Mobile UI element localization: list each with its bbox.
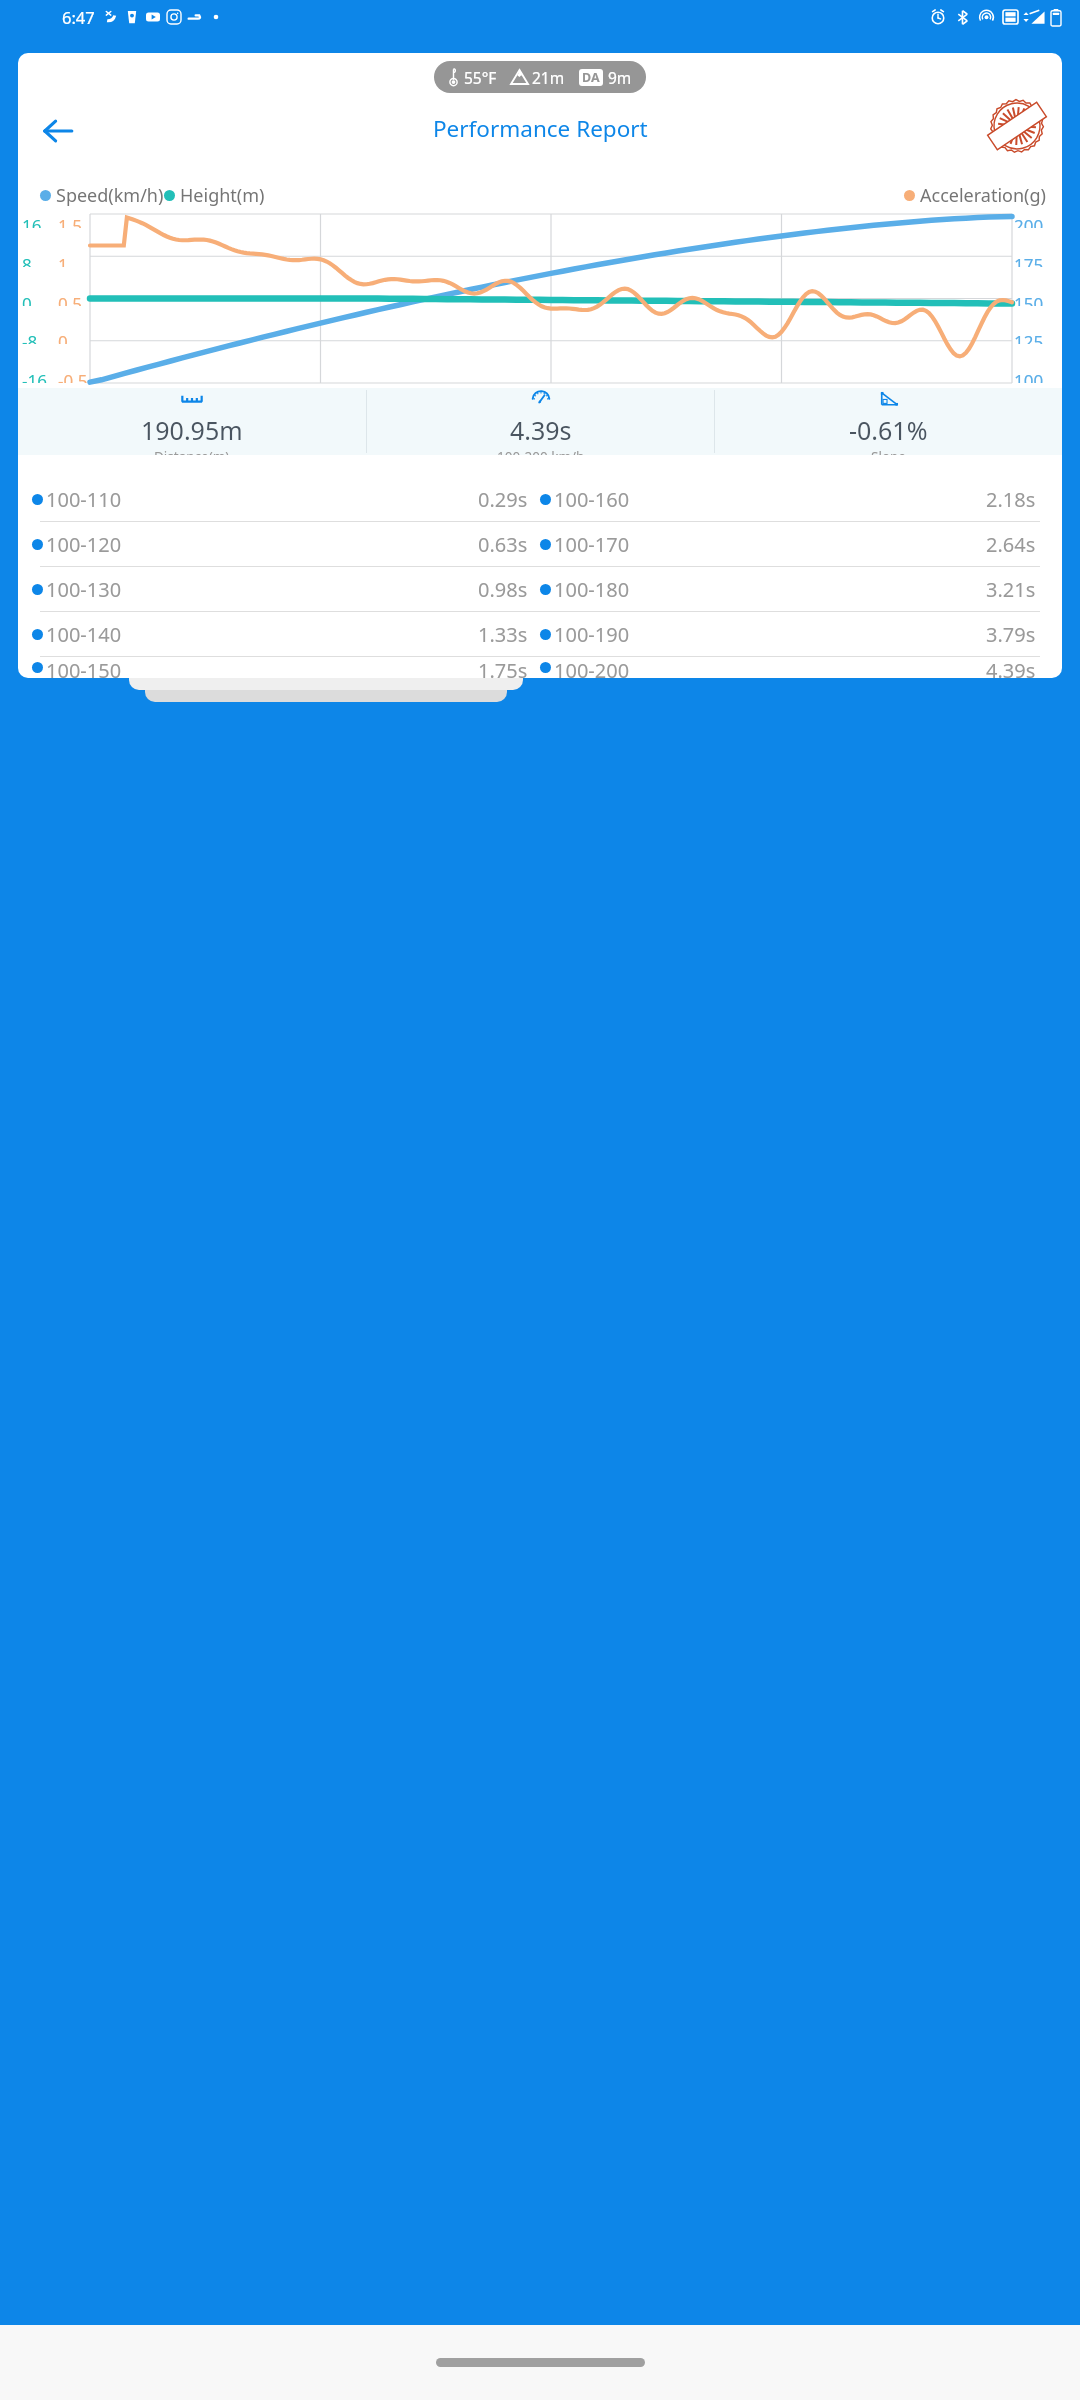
staticText: 100-190 [554, 621, 630, 648]
staticText: 4.39s [510, 413, 572, 447]
button[interactable]: 100-130 [32, 567, 1048, 611]
staticText: 1.33s [478, 621, 528, 648]
staticText: 100-130 [46, 576, 122, 603]
button[interactable]: 100-150 [32, 657, 1048, 678]
staticText: Acceleration(g) [920, 183, 1046, 208]
staticText: 125 [1014, 330, 1044, 344]
staticText: 55°F [464, 67, 497, 88]
staticText: -0.5 [58, 369, 88, 383]
staticText: 100-140 [46, 621, 122, 648]
staticText: 100 [1014, 369, 1044, 383]
staticText: 100-200 km/h [497, 448, 585, 455]
staticText: 100-170 [554, 531, 630, 558]
staticText: Speed(km/h) [56, 183, 164, 208]
staticText: 2.64s [986, 531, 1036, 558]
staticText: 100-120 [46, 531, 122, 558]
button[interactable]: 100-140 [32, 612, 1048, 656]
staticText: 1 [58, 253, 68, 267]
staticText: 150 [1014, 292, 1044, 306]
staticText: Height(m) [180, 183, 265, 208]
staticText: 0.63s [478, 531, 528, 558]
staticText: 8 [22, 253, 32, 267]
staticText: 3.79s [986, 621, 1036, 648]
staticText: 1.75s [478, 657, 528, 678]
staticText: 100-160 [554, 486, 630, 513]
staticText: 175 [1014, 253, 1044, 267]
staticText: 1.5 [58, 214, 83, 228]
staticText: 0.98s [478, 576, 528, 603]
staticText: 190.95m [141, 413, 243, 447]
staticText: 200 [1014, 214, 1044, 228]
staticText: 0.29s [478, 486, 528, 513]
staticText: 100-200 [554, 657, 630, 678]
staticText: 21m [532, 67, 565, 88]
staticText: 3.21s [986, 576, 1036, 603]
staticText: 9m [608, 67, 632, 88]
staticText: 2.18s [986, 486, 1036, 513]
staticText: -16 [22, 369, 47, 383]
staticText: 100-180 [554, 576, 630, 603]
staticText: 0 [22, 292, 32, 306]
staticText: 6:47 [62, 6, 95, 28]
staticText: -0.61% [849, 413, 928, 447]
button[interactable]: Back [32, 105, 84, 157]
button[interactable]: 55°F [448, 61, 632, 93]
staticText: Distance(m) [154, 448, 230, 455]
staticText: 0.5 [58, 292, 83, 306]
staticText: 100-110 [46, 486, 122, 513]
staticText: Performance Report [433, 113, 648, 144]
staticText: Slope [871, 448, 906, 455]
staticText: 4.39s [986, 657, 1036, 678]
staticText: 0 [58, 330, 68, 344]
button[interactable]: 100-110 [32, 477, 1048, 521]
staticText: DA [582, 69, 600, 86]
staticText: 16 [22, 214, 42, 228]
button[interactable]: 100-120 [32, 522, 1048, 566]
staticText: -8 [22, 330, 38, 344]
button[interactable]: -0.61% [715, 388, 1062, 455]
button[interactable]: 4.39s [367, 388, 714, 455]
staticText: 100-150 [46, 657, 122, 678]
button[interactable]: 190.95m [18, 388, 366, 455]
